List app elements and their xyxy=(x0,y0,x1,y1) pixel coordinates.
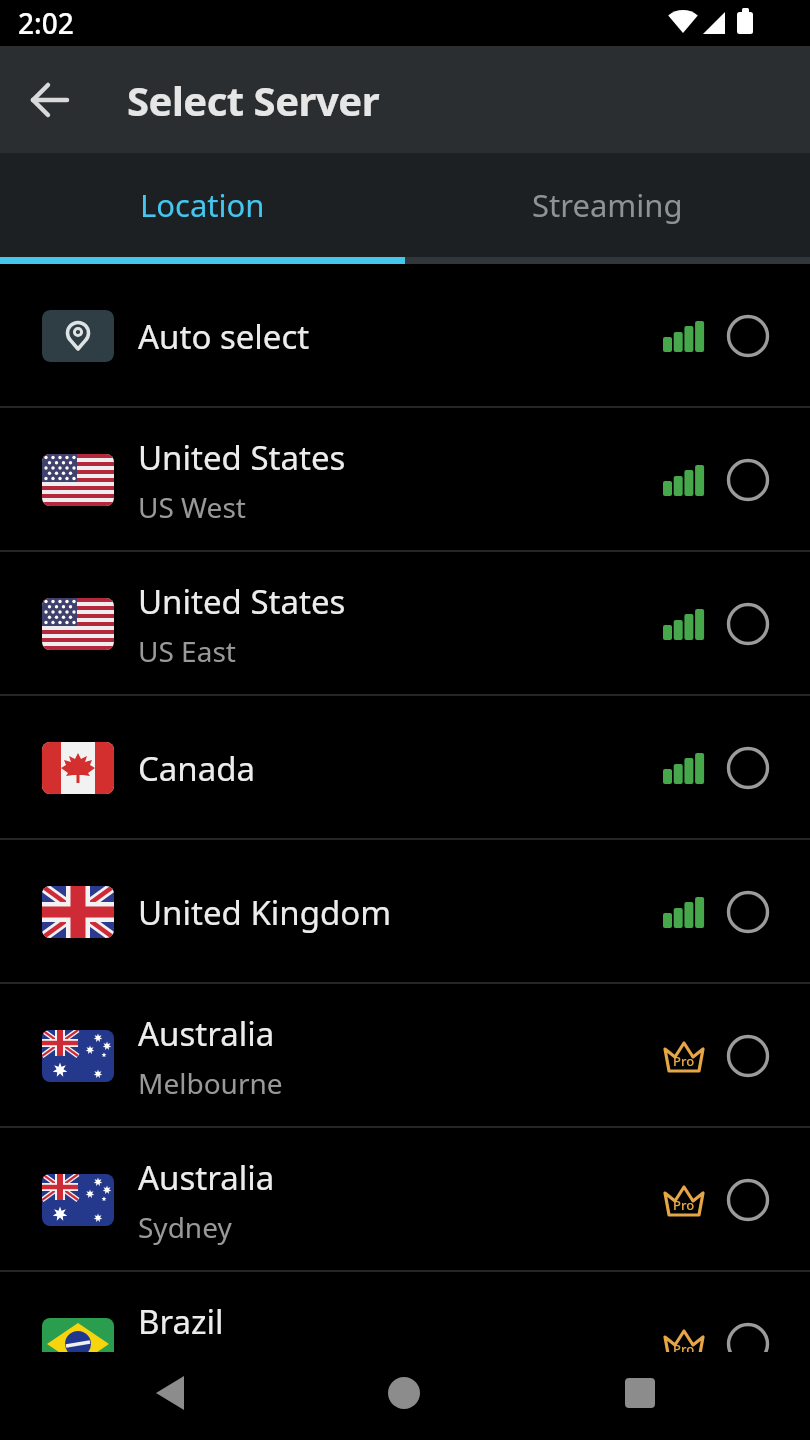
button[interactable]: Auto select xyxy=(0,264,810,408)
staticText: Australia xyxy=(138,1155,275,1200)
button[interactable]: United States xyxy=(0,552,810,696)
button[interactable]: Streaming xyxy=(405,153,810,257)
button[interactable] xyxy=(0,1352,270,1440)
staticText: US East xyxy=(138,632,236,670)
staticText: Location xyxy=(140,184,265,226)
button[interactable]: Brazil xyxy=(0,1272,810,1352)
staticText: Pro xyxy=(673,1340,695,1352)
staticText: Select Server xyxy=(127,73,380,127)
button[interactable] xyxy=(28,78,72,122)
button[interactable]: Australia xyxy=(0,984,810,1128)
button[interactable]: Canada xyxy=(0,696,810,840)
button[interactable] xyxy=(540,1352,810,1440)
staticText: Auto select xyxy=(138,314,310,359)
staticText: Brazil xyxy=(138,1299,224,1344)
staticText: 2:02 xyxy=(18,4,74,42)
button[interactable]: United Kingdom xyxy=(0,840,810,984)
staticText: United Kingdom xyxy=(138,890,392,935)
button[interactable] xyxy=(270,1352,540,1440)
staticText: Canada xyxy=(138,746,256,791)
staticText: United States xyxy=(138,435,346,480)
staticText: Australia xyxy=(138,1011,275,1056)
button[interactable]: Australia xyxy=(0,1128,810,1272)
staticText: Pro xyxy=(673,1052,695,1070)
staticText: Pro xyxy=(673,1196,695,1214)
staticText: Streaming xyxy=(532,184,683,226)
staticText: Sydney xyxy=(138,1208,232,1246)
staticText: Melbourne xyxy=(138,1064,283,1102)
button[interactable]: Location xyxy=(0,153,405,257)
staticText: US West xyxy=(138,488,246,526)
button[interactable]: United States xyxy=(0,408,810,552)
staticText: United States xyxy=(138,579,346,624)
